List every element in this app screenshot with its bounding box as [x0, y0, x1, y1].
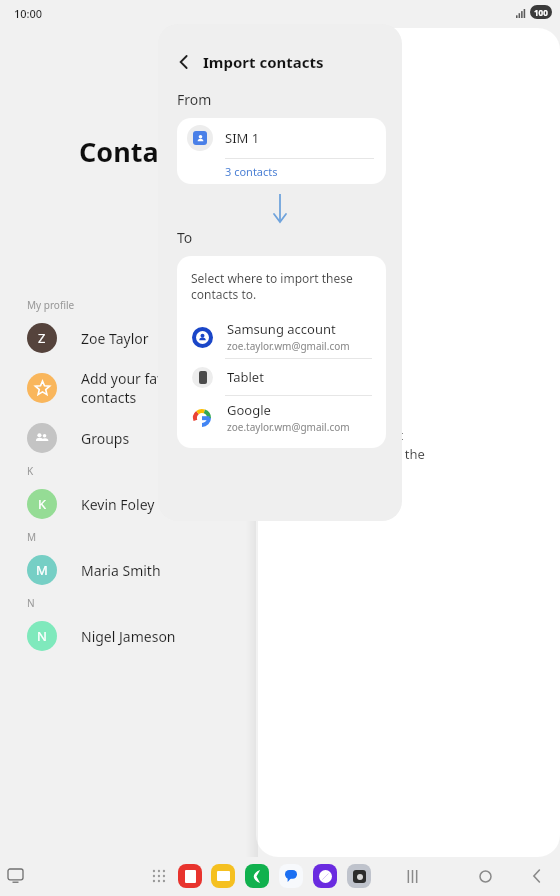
button[interactable]: App	[347, 864, 371, 888]
staticText: Groups	[81, 429, 130, 448]
button[interactable]: Z	[0, 317, 560, 359]
button[interactable]: N	[0, 615, 560, 657]
staticText: Nigel Jameson	[81, 627, 176, 646]
staticText: Import contacts	[203, 52, 324, 72]
staticText: My profile	[27, 298, 75, 312]
staticText: Tablet	[227, 368, 264, 386]
button[interactable]: M	[0, 549, 560, 591]
staticText: SIM 1	[225, 129, 260, 147]
staticText: Maria Smith	[81, 561, 161, 580]
staticText: From	[177, 90, 212, 109]
button[interactable]: Samsung account	[177, 315, 386, 358]
button[interactable]: Tablet	[177, 359, 386, 395]
button[interactable]: App	[211, 864, 235, 888]
staticText: M	[27, 530, 37, 544]
button[interactable]: App	[313, 864, 337, 888]
button[interactable]: Recent apps panel	[5, 866, 25, 886]
staticText: Z	[38, 329, 46, 347]
staticText: zoe.taylor.wm@gmail.com	[227, 420, 350, 434]
button[interactable]: App	[279, 864, 303, 888]
button[interactable]: Apps	[150, 867, 168, 885]
button[interactable]: K	[0, 483, 560, 525]
button[interactable]: Navigation	[400, 864, 424, 888]
staticText: K	[27, 464, 34, 478]
staticText: Add your favourite contacts	[81, 369, 204, 407]
button[interactable]: Navigation	[473, 864, 497, 888]
button[interactable]: Groups	[0, 417, 560, 459]
staticText: Select where to import these contacts to…	[191, 270, 353, 303]
staticText: Zoe Taylor	[81, 329, 149, 348]
staticText: Kevin Foley	[81, 495, 155, 514]
staticText: 10:00	[14, 6, 43, 21]
button[interactable]: App	[178, 864, 202, 888]
staticText: 3 contacts	[225, 164, 278, 179]
staticText: M	[36, 561, 48, 579]
staticText: Google	[227, 401, 271, 419]
staticText: zoe.taylor.wm@gmail.com	[227, 339, 350, 353]
staticText: Samsung account	[227, 320, 336, 338]
button[interactable]: Add your favourite contacts	[0, 359, 560, 417]
staticText: K	[38, 495, 47, 513]
staticText: Select a contact from the list on the le…	[308, 426, 425, 482]
button[interactable]: Back	[170, 48, 198, 76]
button[interactable]: App	[245, 864, 269, 888]
staticText: Contacts	[79, 133, 198, 170]
staticText: N	[27, 596, 35, 610]
button[interactable]: SIM 1	[177, 118, 386, 184]
button[interactable]: Google	[177, 396, 386, 439]
staticText: To	[177, 228, 193, 247]
staticText: 100	[534, 7, 548, 18]
staticText: N	[37, 627, 47, 645]
button[interactable]: Navigation	[525, 864, 549, 888]
